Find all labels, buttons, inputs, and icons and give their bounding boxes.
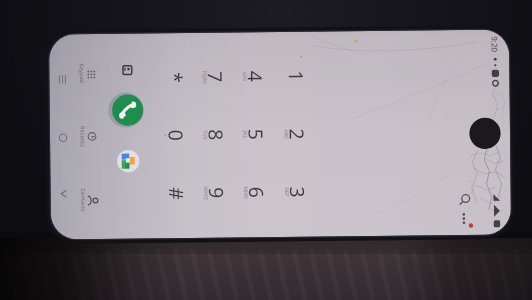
button[interactable]: Phone dialer [0, 0, 532, 300]
